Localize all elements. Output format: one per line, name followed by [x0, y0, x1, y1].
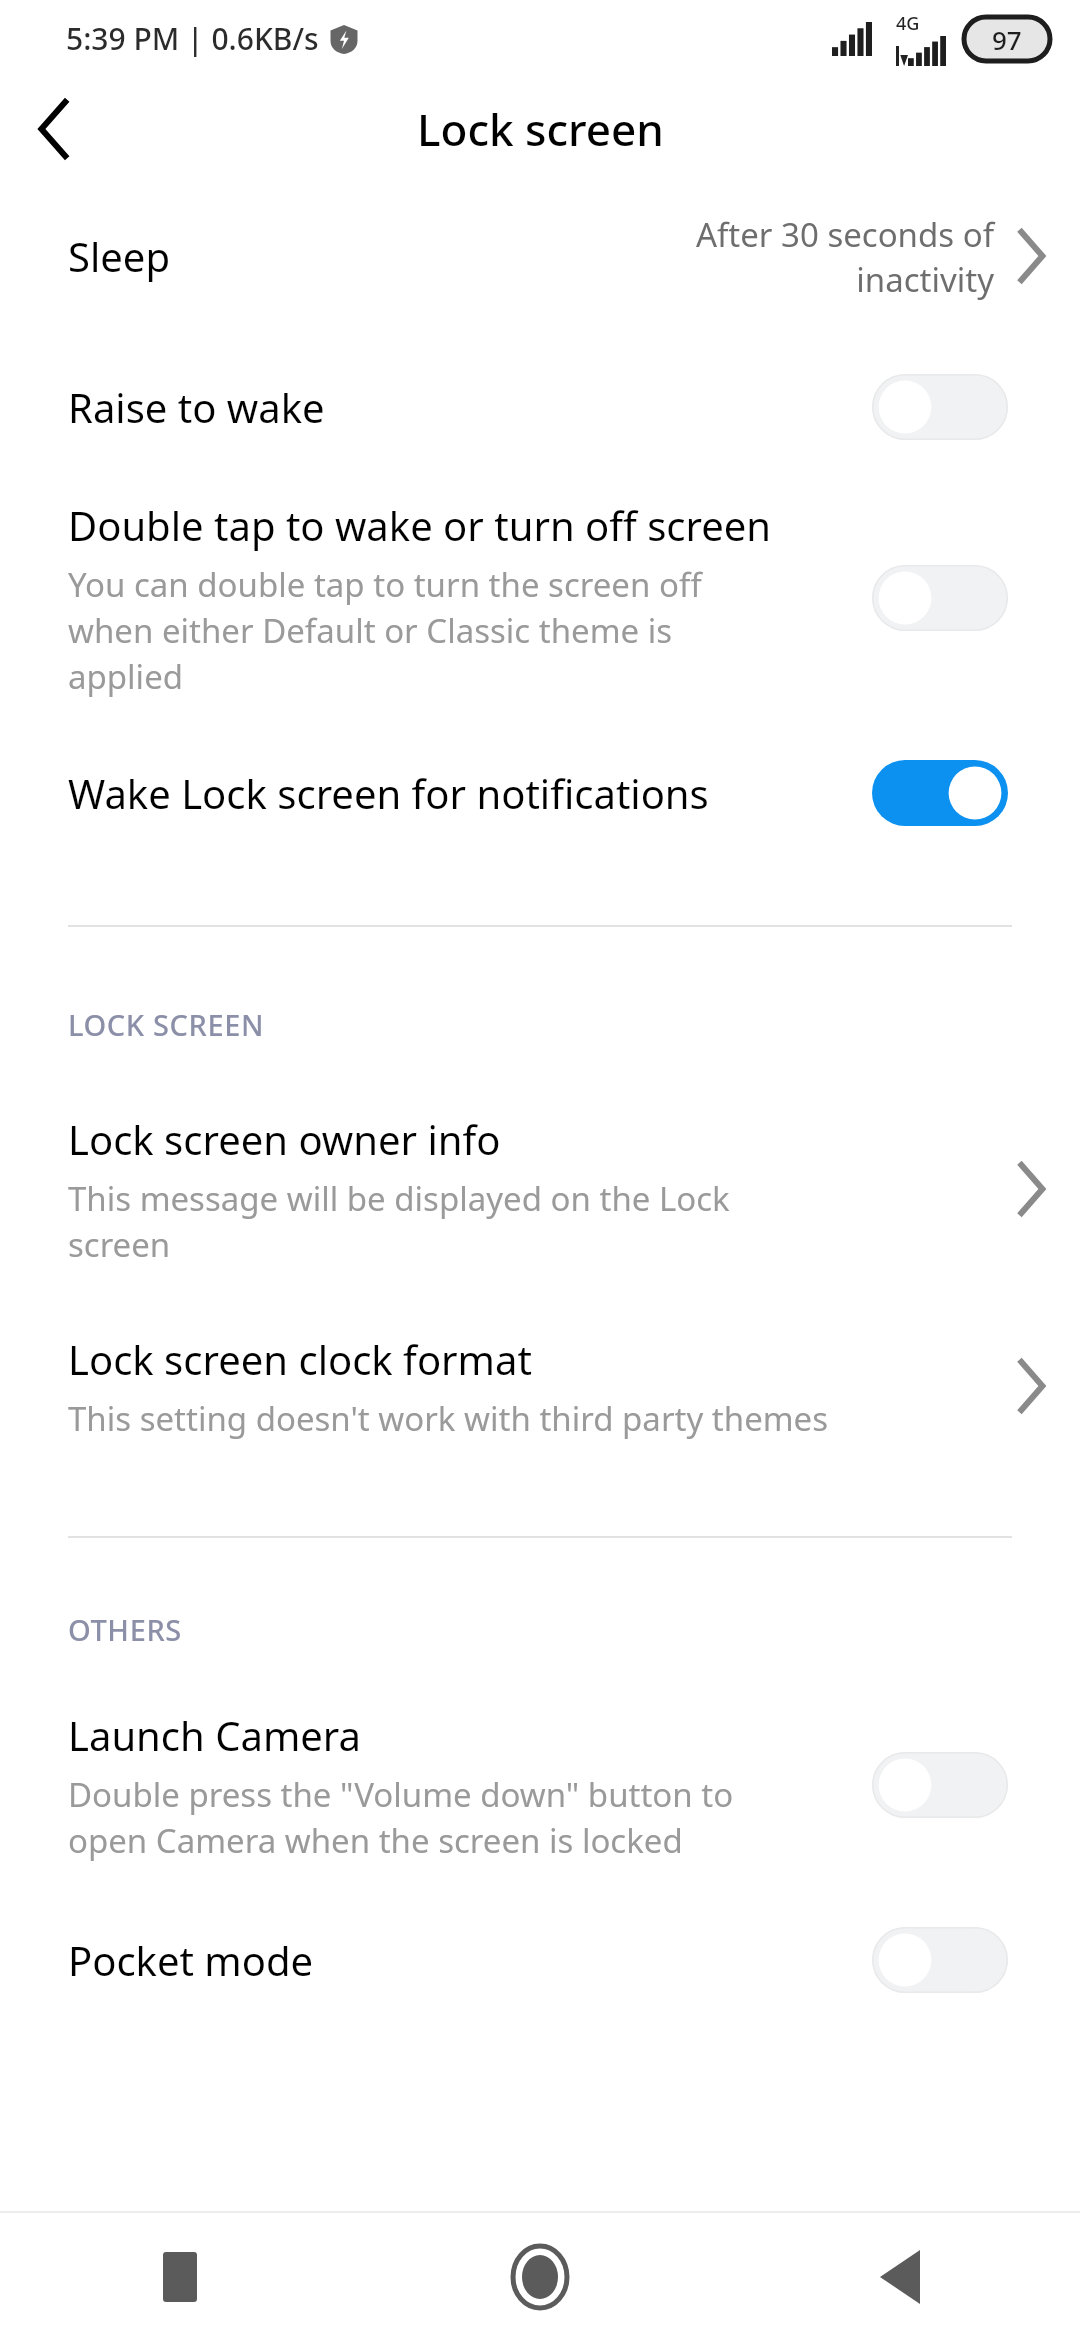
staticText: LOCK SCREEN	[68, 1005, 265, 1044]
button[interactable]: Pocket mode	[0, 1885, 1080, 2035]
button[interactable]: On	[872, 760, 1008, 826]
button[interactable]: Raise to wake	[0, 331, 1080, 483]
staticText: Sleep	[68, 229, 170, 283]
staticText: Double press the "Volume down" button to…	[68, 1772, 734, 1863]
button[interactable]: Off	[872, 1927, 1008, 1993]
staticText: Raise to wake	[68, 380, 325, 434]
staticText: This message will be displayed on the Lo…	[68, 1176, 730, 1267]
button[interactable]: Launch Camera	[0, 1685, 1080, 1885]
button[interactable]: Back	[0, 76, 110, 181]
staticText: Pocket mode	[68, 1933, 314, 1987]
staticText: After 30 seconds of inactivity	[695, 212, 994, 301]
button[interactable]: Back	[720, 2213, 1080, 2340]
button[interactable]: Wake Lock screen for notifications	[0, 713, 1080, 873]
staticText: 5:39 PM | 0.6KB/s	[66, 18, 319, 59]
staticText: You can double tap to turn the screen of…	[68, 562, 702, 699]
button[interactable]: Double tap to wake or turn off screen	[0, 483, 1080, 713]
button[interactable]: Off	[872, 1752, 1008, 1818]
staticText: 97	[992, 22, 1022, 57]
staticText: Double tap to wake or turn off screen	[68, 498, 772, 552]
staticText: 4G	[896, 11, 920, 36]
button[interactable]: Sleep	[0, 181, 1080, 331]
staticText: Lock screen clock format	[68, 1332, 532, 1386]
staticText: Lock screen	[417, 99, 664, 159]
staticText: Lock screen owner info	[68, 1112, 501, 1166]
button[interactable]: Home	[360, 2213, 720, 2340]
button[interactable]: Off	[872, 565, 1008, 631]
button[interactable]: Recent apps	[0, 2213, 360, 2340]
button[interactable]: Off	[872, 374, 1008, 440]
button[interactable]: Lock screen owner info	[0, 1080, 1080, 1298]
button[interactable]: Lock screen clock format	[0, 1298, 1080, 1474]
staticText: Wake Lock screen for notifications	[68, 766, 709, 820]
staticText: Launch Camera	[68, 1708, 361, 1762]
staticText: This setting doesn't work with third par…	[68, 1396, 829, 1441]
staticText: OTHERS	[68, 1610, 182, 1649]
